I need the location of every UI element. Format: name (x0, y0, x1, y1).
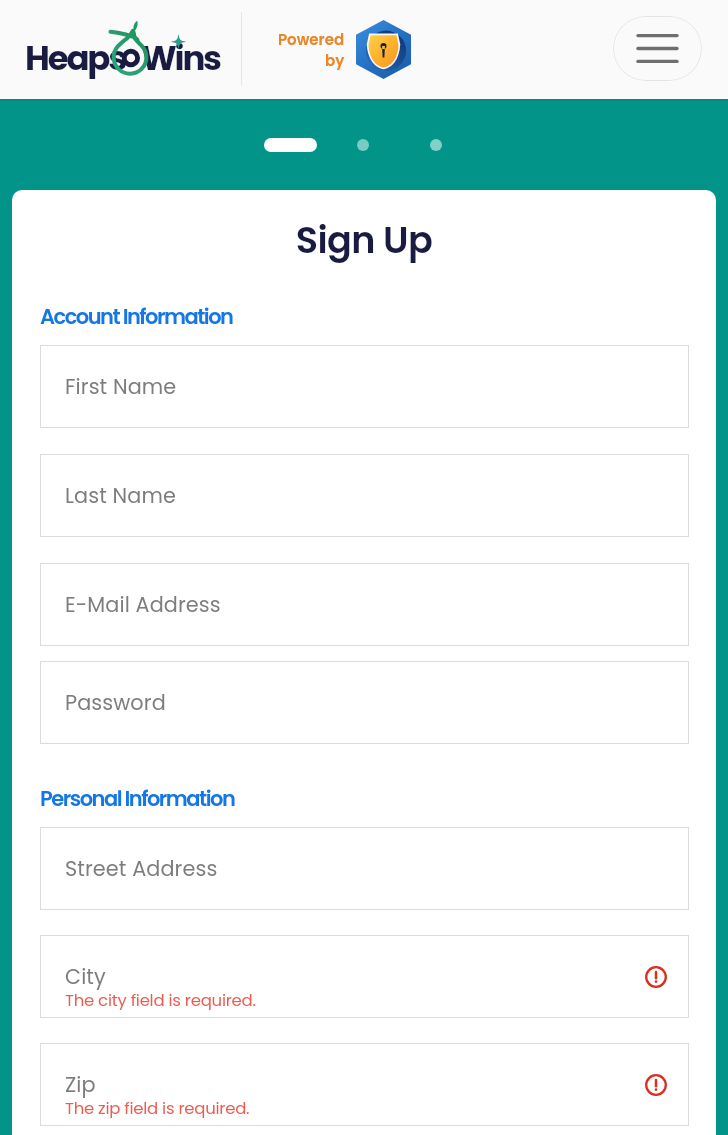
button[interactable]: First Name (40, 345, 689, 428)
staticText: The city field is required. (65, 989, 256, 1012)
staticText: City (65, 962, 106, 991)
button[interactable]: Step 3 (430, 139, 442, 151)
staticText: Wins (141, 34, 220, 82)
staticText: Heaps (25, 34, 125, 82)
staticText: The zip field is required. (65, 1097, 250, 1120)
staticText: Password (65, 688, 166, 717)
button[interactable]: Password (40, 661, 689, 744)
staticText: Powered (278, 29, 345, 50)
button[interactable]: Zip (40, 1043, 689, 1126)
button[interactable]: E-Mail Address (40, 563, 689, 646)
staticText: Last Name (65, 481, 176, 510)
staticText: Account Information (40, 302, 233, 331)
staticText: First Name (65, 372, 177, 401)
staticText: Zip (65, 1070, 96, 1099)
button[interactable]: Step 1 (264, 138, 317, 152)
button[interactable]: Step 2 (357, 139, 369, 151)
button[interactable]: Menu (613, 16, 702, 81)
staticText: Personal Information (40, 784, 235, 813)
button[interactable]: City (40, 935, 689, 1018)
staticText: by (325, 50, 345, 71)
staticText: Sign Up (12, 215, 716, 266)
button[interactable]: Last Name (40, 454, 689, 537)
button[interactable]: Street Address (40, 827, 689, 910)
staticText: E-Mail Address (65, 590, 221, 619)
staticText: Street Address (65, 854, 218, 883)
